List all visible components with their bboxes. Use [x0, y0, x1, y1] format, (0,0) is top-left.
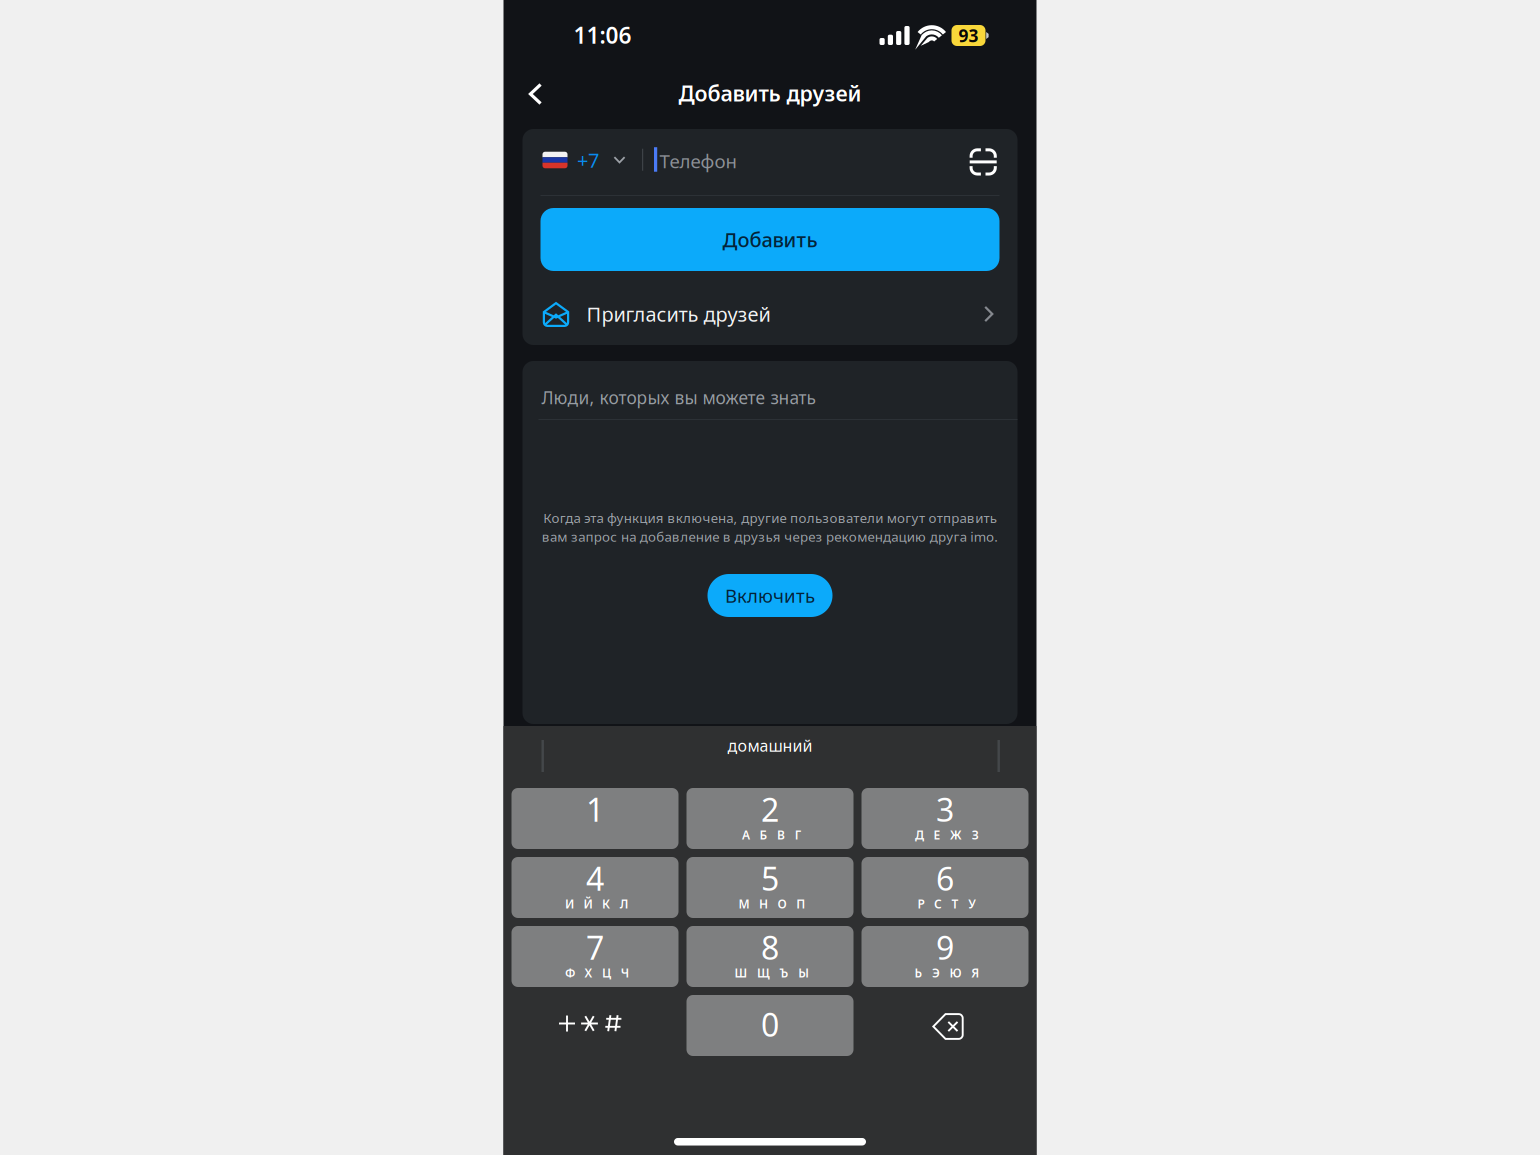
staticText: 4: [586, 857, 604, 899]
button[interactable]: Добавить: [540, 208, 999, 271]
staticText: 3: [936, 788, 954, 830]
staticText: Ш Щ Ъ Ы: [734, 965, 809, 981]
staticText: Пригласить друзей: [586, 301, 770, 327]
button[interactable]: Назад: [512, 71, 558, 117]
staticText: 5: [761, 857, 779, 899]
staticText: 93: [958, 24, 978, 47]
staticText: +7: [577, 147, 599, 173]
button[interactable]: Удалить: [861, 995, 1028, 1056]
staticText: вам запрос на добавление в друзья через …: [542, 528, 998, 545]
button[interactable]: 5: [686, 857, 853, 918]
button[interactable]: Включить: [707, 574, 832, 617]
button[interactable]: Сканировать QR-код: [962, 141, 1004, 183]
staticText: И Й К Л: [565, 896, 629, 912]
button[interactable]: 2: [686, 788, 853, 849]
button[interactable]: 9: [861, 926, 1028, 987]
staticText: 9: [936, 926, 954, 968]
staticText: 1: [586, 788, 604, 830]
staticText: 8: [761, 926, 779, 968]
staticText: Добавить: [722, 226, 817, 253]
staticText: А Б В Г: [742, 827, 802, 843]
staticText: Ф Х Ц Ч: [565, 965, 629, 981]
staticText: 6: [936, 857, 954, 899]
staticText: Ь Э Ю Я: [914, 965, 979, 981]
button[interactable]: 3: [861, 788, 1028, 849]
button[interactable]: 7: [511, 926, 678, 987]
staticText: домашний: [727, 735, 812, 756]
staticText: 11:06: [573, 20, 631, 50]
button[interactable]: 8: [686, 926, 853, 987]
staticText: Телефон: [659, 149, 736, 173]
button[interactable]: Символы: [511, 995, 678, 1056]
staticText: Когда эта функция включена, другие польз…: [543, 509, 997, 527]
button[interactable]: 0: [686, 995, 853, 1056]
button[interactable]: 4: [511, 857, 678, 918]
staticText: М Н О П: [738, 896, 805, 912]
button[interactable]: 6: [861, 857, 1028, 918]
staticText: Люди, которых вы можете знать: [541, 386, 815, 409]
staticText: Добавить друзей: [678, 79, 861, 107]
button[interactable]: Код страны, +7: [522, 129, 637, 191]
staticText: Р С Т У: [917, 896, 976, 912]
button[interactable]: 1: [511, 788, 678, 849]
staticText: 7: [586, 926, 604, 968]
staticText: 2: [761, 788, 779, 830]
staticText: Д Е Ж З: [915, 827, 979, 843]
staticText: Включить: [725, 583, 815, 608]
staticText: 0: [761, 1003, 779, 1045]
button[interactable]: Пригласить друзей: [522, 283, 1017, 345]
